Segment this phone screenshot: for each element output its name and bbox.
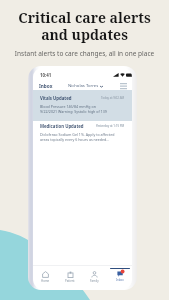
staticText: Family [90, 279, 99, 283]
button[interactable]: Nicholas Torres [68, 83, 103, 89]
staticText: Vitals Updated [40, 95, 72, 101]
button[interactable]: Patient [57, 268, 82, 284]
staticText: Critical care alerts and updates [0, 8, 169, 44]
staticText: Diclofenac Sodium Gel 1%. Apply to affec… [40, 132, 115, 142]
staticText: Medication Updated [40, 123, 84, 129]
staticText: Yesterday at 1:15 PM [96, 124, 125, 128]
button[interactable]: Menu [119, 81, 128, 90]
button[interactable]: Inbox [39, 83, 53, 89]
staticText: Patient [65, 279, 75, 283]
button[interactable]: Family [82, 268, 107, 284]
button[interactable]: Home [33, 268, 57, 284]
button[interactable]: Inbox [107, 268, 132, 284]
staticText: Today at 9:02 AM [101, 96, 125, 100]
staticText: 10:41 [40, 72, 52, 78]
staticText: Home [41, 279, 50, 283]
button[interactable]: Medication Updated [33, 123, 132, 151]
staticText: Nicholas Torres [68, 83, 99, 89]
staticText: Blood Pressure 146/84 mmHg on 9/22/2021 … [40, 104, 107, 114]
staticText: Inbox [116, 278, 124, 282]
button[interactable]: Vitals Updated [33, 95, 132, 123]
staticText: Instant alerts to care changes, all in o… [0, 49, 169, 58]
